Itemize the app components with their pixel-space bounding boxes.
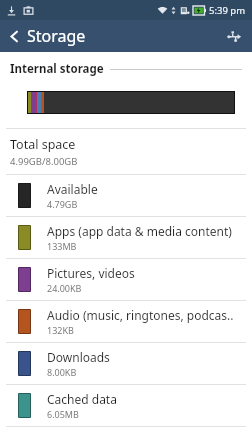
staticText: Storage <box>27 25 86 47</box>
staticText: 24.00KB <box>47 282 82 294</box>
staticText: Internal storage <box>10 61 104 77</box>
staticText: 133MB <box>47 240 77 252</box>
staticText: Cached data <box>47 391 117 407</box>
button[interactable]: Apps (app data & media content) <box>0 217 252 258</box>
staticText: 6.05MB <box>47 408 79 420</box>
button[interactable]: Audio (music, ringtones, podcas.. <box>0 301 252 342</box>
staticText: Pictures, videos <box>47 265 135 281</box>
button[interactable]: Cached data <box>0 385 252 426</box>
staticText: Available <box>47 181 98 197</box>
button[interactable]: Available <box>0 175 252 216</box>
button[interactable]: Pictures, videos <box>0 259 252 300</box>
button[interactable]: USB <box>216 24 252 49</box>
staticText: Audio (music, ringtones, podcas.. <box>47 307 234 323</box>
staticText: 132KB <box>47 324 74 336</box>
staticText: 8.00KB <box>47 366 77 378</box>
staticText: Apps (app data & media content) <box>47 223 232 239</box>
button[interactable]: Downloads <box>0 343 252 384</box>
staticText: 4.99GB/8.00GB <box>10 155 78 168</box>
staticText: Downloads <box>47 349 110 365</box>
staticText: 5:39 pm <box>209 4 246 17</box>
staticText: Total space <box>10 136 76 153</box>
staticText: 4.79GB <box>47 198 78 210</box>
button[interactable]: Storage <box>0 21 96 51</box>
